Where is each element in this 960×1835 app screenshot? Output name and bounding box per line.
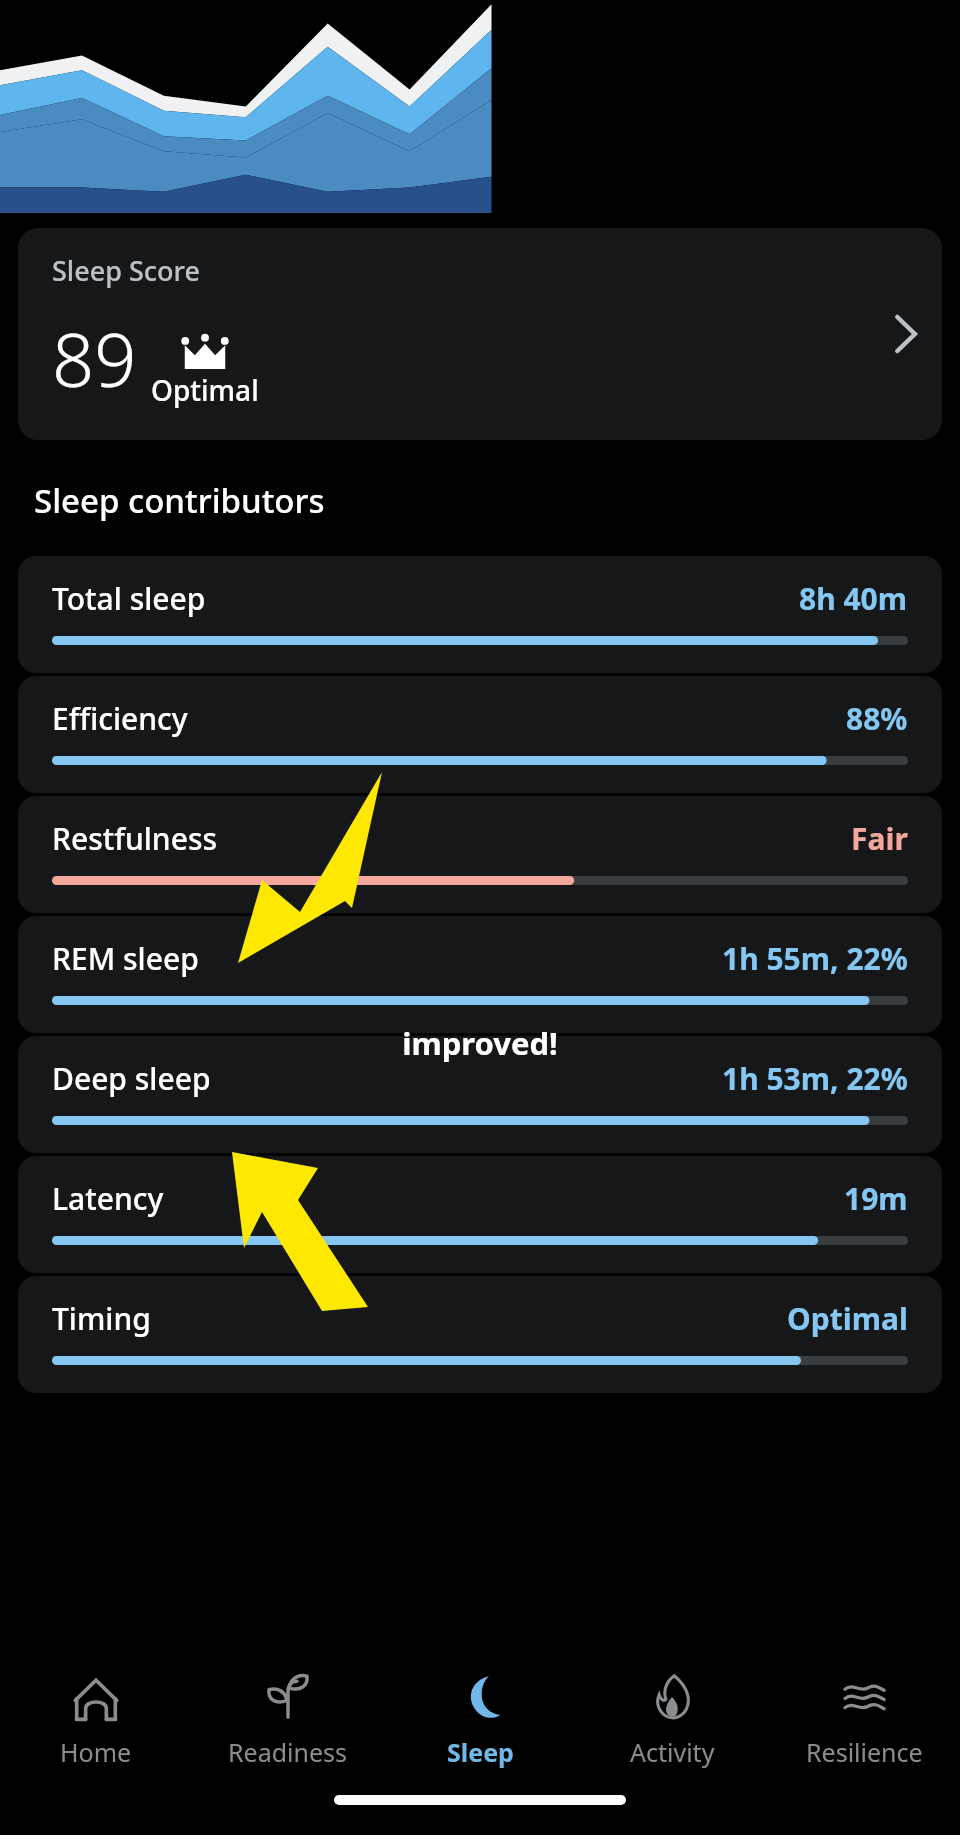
staticText: REM sleep bbox=[52, 938, 199, 979]
staticText: Sleep bbox=[447, 1735, 514, 1769]
staticText: Latency bbox=[52, 1178, 164, 1219]
staticText: Restfulness bbox=[52, 818, 218, 859]
staticText: Optimal bbox=[151, 371, 259, 409]
staticText: 88% bbox=[846, 698, 908, 739]
button[interactable]: Total sleep bbox=[18, 556, 942, 673]
button[interactable]: REM sleep bbox=[18, 916, 942, 1033]
staticText: Readiness bbox=[228, 1735, 348, 1769]
button[interactable]: Home bbox=[0, 1645, 192, 1795]
button[interactable]: Readiness bbox=[192, 1645, 384, 1795]
button[interactable]: Resilience bbox=[768, 1645, 960, 1795]
button[interactable]: Sleep bbox=[384, 1645, 576, 1795]
button[interactable]: Sleep Score bbox=[18, 228, 942, 440]
button[interactable]: Activity bbox=[576, 1645, 768, 1795]
staticText: Sleep Score bbox=[52, 252, 200, 289]
staticText: Activity bbox=[630, 1735, 715, 1769]
button[interactable]: Efficiency bbox=[18, 676, 942, 793]
staticText: 1h 55m, 22% bbox=[722, 938, 908, 979]
other: Open sleep score details bbox=[894, 317, 916, 351]
staticText: Sleep contributors bbox=[34, 478, 325, 523]
staticText: 1h 53m, 22% bbox=[722, 1058, 908, 1099]
staticText: Timing bbox=[52, 1298, 151, 1339]
staticText: 8h 40m bbox=[799, 578, 908, 619]
button[interactable]: Restfulness bbox=[18, 796, 942, 913]
staticText: Total sleep bbox=[52, 578, 206, 619]
staticText: Resilience bbox=[806, 1735, 923, 1769]
staticText: Efficiency bbox=[52, 698, 188, 739]
staticText: Optimal bbox=[787, 1298, 908, 1339]
button[interactable]: Latency bbox=[18, 1156, 942, 1273]
staticText: 19m bbox=[844, 1178, 908, 1219]
staticText: Fair bbox=[851, 818, 908, 859]
staticText: Home bbox=[60, 1735, 132, 1769]
button[interactable]: Timing bbox=[18, 1276, 942, 1393]
button[interactable]: Deep sleep bbox=[18, 1036, 942, 1153]
staticText: improved! bbox=[0, 1022, 960, 1064]
staticText: Deep sleep bbox=[52, 1058, 211, 1099]
staticText: 89 bbox=[52, 308, 137, 409]
